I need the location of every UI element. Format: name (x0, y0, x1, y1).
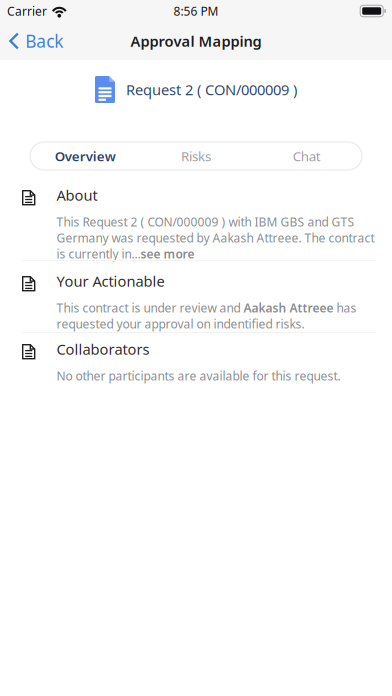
staticText: Approval Mapping (130, 31, 261, 51)
staticText: This Request 2 ( CON/000009 ) with IBM G… (56, 214, 374, 262)
staticText: Back (25, 29, 63, 52)
staticText: Request 2 ( CON/000009 ) (126, 80, 297, 99)
button[interactable]: Risks (141, 142, 251, 170)
staticText: Your Actionable (56, 271, 164, 291)
staticText: Carrier (7, 3, 47, 19)
button[interactable]: Overview (30, 142, 141, 170)
staticText: About (56, 185, 97, 205)
staticText: No other participants are available for … (56, 368, 340, 384)
button[interactable]: Back (0, 22, 75, 59)
button[interactable]: Chat (251, 142, 362, 170)
staticText: Overview (55, 147, 116, 165)
staticText: This contract is under review and Aakash… (56, 300, 356, 332)
staticText: Collaborators (56, 339, 149, 359)
staticText: Risks (181, 147, 211, 165)
staticText: 8:56 PM (173, 3, 218, 19)
staticText: Chat (293, 147, 321, 165)
